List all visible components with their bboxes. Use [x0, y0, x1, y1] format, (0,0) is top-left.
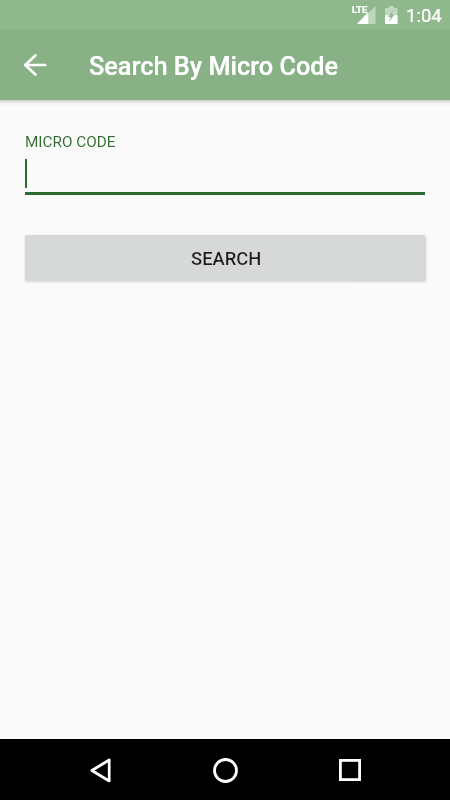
- button[interactable]: Back: [70, 740, 130, 800]
- button[interactable]: Recents: [320, 740, 380, 800]
- button[interactable]: Home: [195, 740, 255, 800]
- button[interactable]: SEARCH: [25, 235, 425, 281]
- staticText: Search By Micro Code: [89, 52, 339, 82]
- staticText: 1:04: [406, 5, 442, 27]
- staticText: MICRO CODE: [25, 133, 116, 151]
- staticText: SEARCH: [191, 248, 262, 270]
- button[interactable]: Back: [16, 46, 54, 84]
- staticText: LTE: [352, 4, 368, 15]
- button[interactable]: [25, 159, 425, 195]
